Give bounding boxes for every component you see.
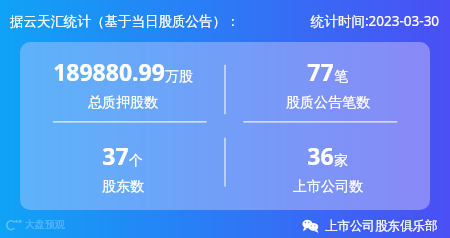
staticText: 上市公司数 xyxy=(293,178,363,196)
staticText: 大盘预观 xyxy=(25,218,65,231)
staticText: 189880.99 xyxy=(53,56,165,87)
staticText: 总质押股数 xyxy=(88,94,158,112)
staticText: 36 xyxy=(307,140,334,171)
button[interactable]: 上市公司股东俱乐部 WeChat xyxy=(302,217,438,234)
button[interactable]: 36 xyxy=(225,126,430,210)
staticText: 个 xyxy=(129,152,143,170)
button[interactable]: 37 xyxy=(20,126,225,210)
button[interactable]: 189880.99 xyxy=(20,42,225,126)
staticText: 上市公司股东俱乐部 xyxy=(325,218,438,234)
staticText: 股质公告笔数 xyxy=(286,94,370,112)
staticText: 37 xyxy=(102,140,129,171)
staticText: 万股 xyxy=(165,68,193,86)
button[interactable]: 77 xyxy=(225,42,430,126)
staticText: 家 xyxy=(334,152,348,170)
staticText: 77 xyxy=(307,56,334,87)
staticText: 股东数 xyxy=(102,178,144,196)
staticText: 统计时间:2023-03-30 xyxy=(311,12,440,30)
staticText: 笔 xyxy=(334,68,348,86)
staticText: 据云天汇统计（基于当日股质公告）： xyxy=(10,13,240,30)
